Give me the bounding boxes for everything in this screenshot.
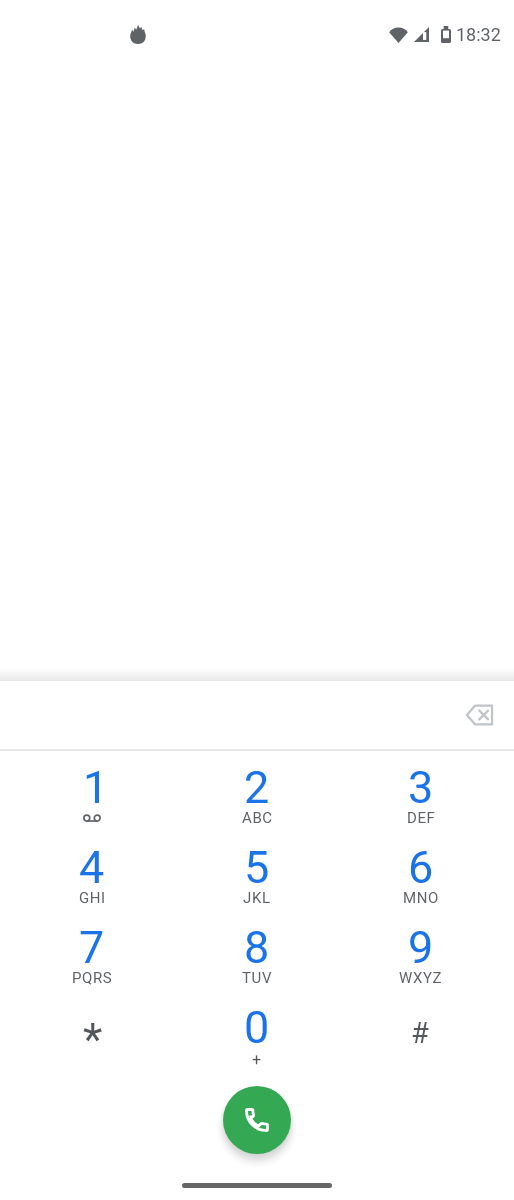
staticText: 7 xyxy=(79,921,105,974)
button[interactable]: 4 xyxy=(10,831,175,911)
staticText: 4 xyxy=(79,841,105,894)
button[interactable]: * xyxy=(10,991,175,1071)
button[interactable]: 9 xyxy=(339,911,504,991)
staticText: 5 xyxy=(244,841,270,894)
staticText: JKL xyxy=(243,889,271,907)
staticText: # xyxy=(411,1016,429,1050)
staticText: * xyxy=(83,1013,103,1066)
staticText: MNO xyxy=(403,889,439,907)
staticText: 8 xyxy=(244,921,270,974)
button[interactable]: 1 xyxy=(10,751,175,831)
staticText: 6 xyxy=(408,841,434,894)
button[interactable]: Backspace xyxy=(453,690,505,740)
button[interactable]: # xyxy=(339,991,504,1071)
staticText: 2 xyxy=(244,761,270,814)
button[interactable]: 3 xyxy=(339,751,504,831)
button[interactable]: 2 xyxy=(175,751,340,831)
staticText: 9 xyxy=(408,921,434,974)
staticText: 1 xyxy=(83,761,109,814)
button[interactable]: 0 xyxy=(175,991,340,1071)
staticText: ABC xyxy=(242,809,273,827)
button[interactable]: 8 xyxy=(175,911,340,991)
button[interactable]: 5 xyxy=(175,831,340,911)
staticText: WXYZ xyxy=(399,969,443,987)
staticText: 0 xyxy=(244,1001,270,1054)
button[interactable]: Call xyxy=(223,1086,291,1154)
staticText: 3 xyxy=(408,761,434,814)
button[interactable]: 6 xyxy=(339,831,504,911)
staticText: + xyxy=(252,1050,262,1069)
staticText: 18:32 xyxy=(456,24,501,45)
button[interactable]: 7 xyxy=(10,911,175,991)
staticText: DEF xyxy=(407,809,436,827)
staticText: PQRS xyxy=(72,969,113,987)
staticText: GHI xyxy=(79,889,106,907)
staticText: TUV xyxy=(242,969,273,987)
